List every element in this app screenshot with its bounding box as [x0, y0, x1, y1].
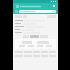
button[interactable]: Menu	[15, 4, 19, 8]
button[interactable]: More options	[52, 4, 56, 8]
button[interactable]: Filter	[15, 10, 18, 13]
button[interactable]	[15, 54, 56, 57]
button[interactable]	[19, 10, 56, 13]
button[interactable]	[15, 50, 56, 53]
